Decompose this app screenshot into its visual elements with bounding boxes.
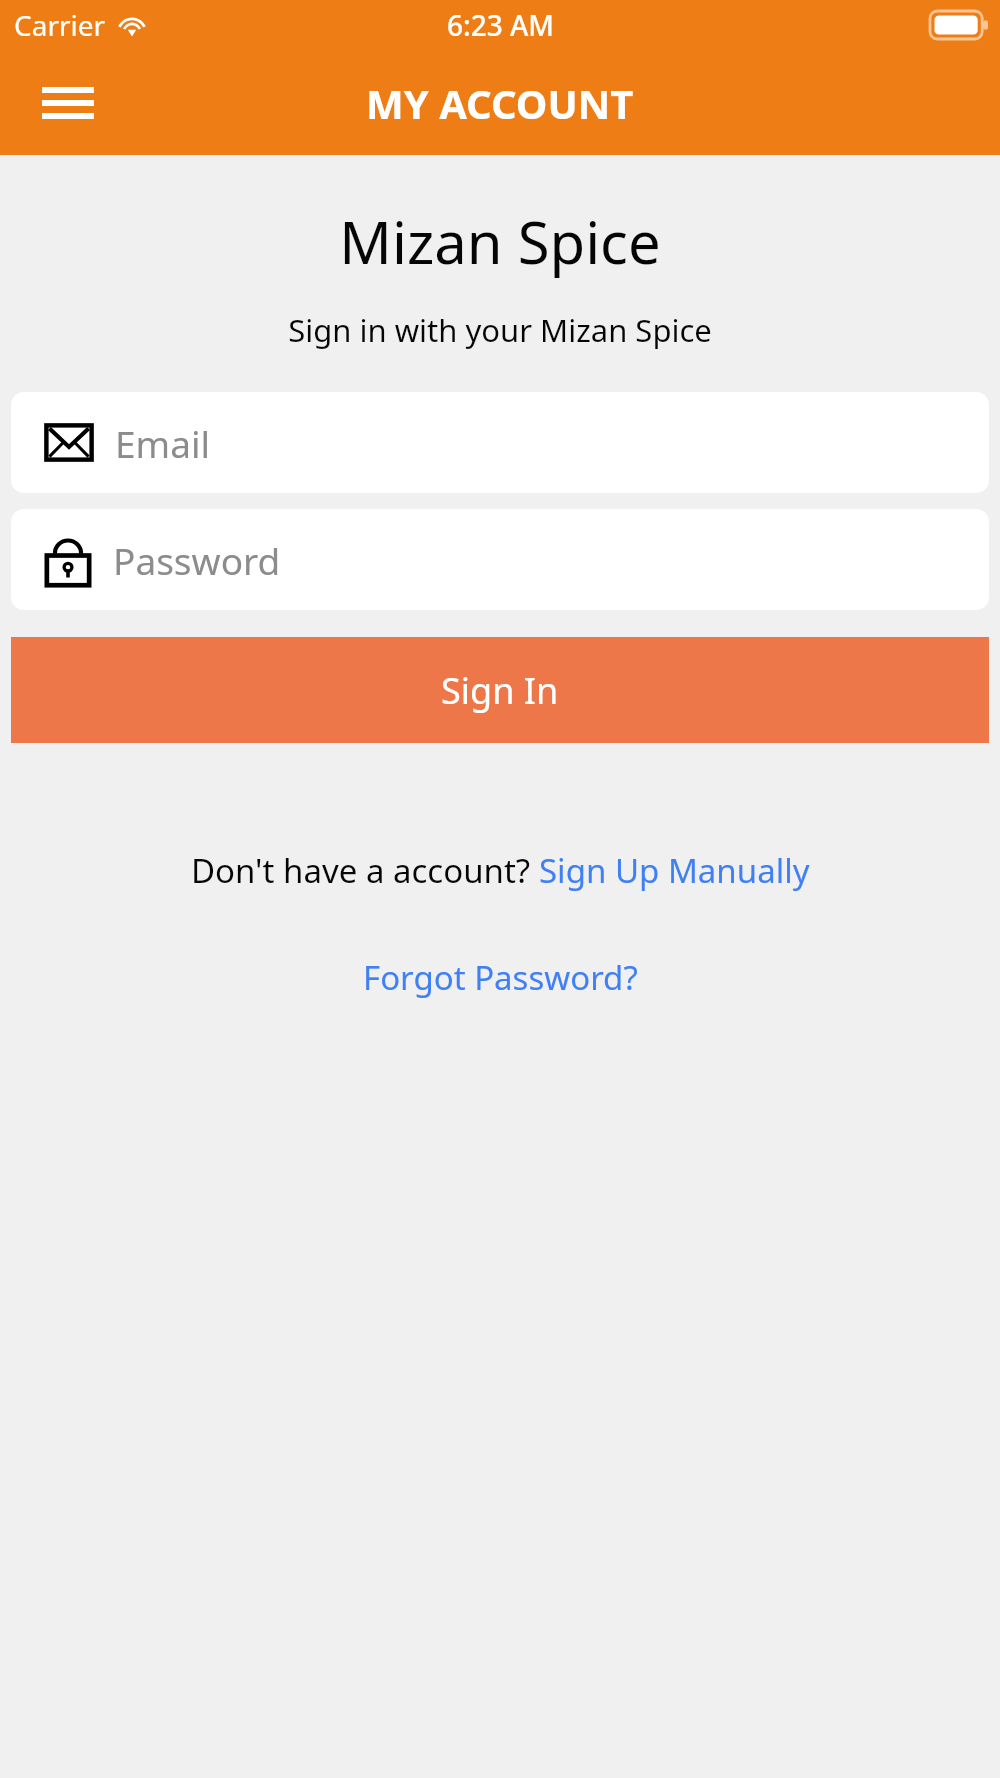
- staticText: 6:23 AM: [447, 6, 554, 44]
- button[interactable]: Forgot Password?: [363, 955, 638, 1000]
- button[interactable]: Menu: [22, 68, 114, 138]
- staticText: MY ACCOUNT: [366, 76, 634, 130]
- button[interactable]: Sign Up Manually: [539, 848, 810, 893]
- staticText: Email: [115, 418, 211, 468]
- staticText: Password: [113, 535, 281, 585]
- staticText: Mizan Spice: [0, 202, 1000, 281]
- staticText: Don't have a account?: [191, 848, 539, 893]
- staticText: Sign Up Manually: [539, 848, 810, 893]
- staticText: Forgot Password?: [363, 955, 638, 1000]
- button[interactable]: Email: [11, 392, 989, 493]
- staticText: Sign In: [441, 666, 559, 715]
- staticText: Carrier: [14, 6, 106, 44]
- button[interactable]: Password: [11, 509, 989, 610]
- button[interactable]: Sign In: [11, 637, 989, 743]
- staticText: Sign in with your Mizan Spice: [0, 309, 1000, 351]
